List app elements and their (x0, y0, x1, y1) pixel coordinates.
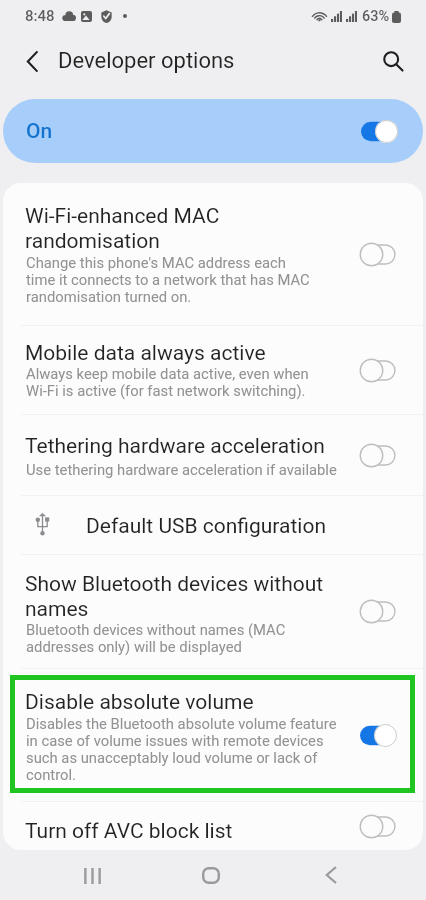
button[interactable]: Wi-Fi-enhanced MAC randomisation (3, 183, 423, 325)
staticText: 8:48 (25, 7, 55, 25)
staticText: Disable absolute volume (25, 689, 385, 714)
button[interactable]: Search (371, 39, 415, 83)
button[interactable]: Recent apps (50, 850, 134, 900)
staticText: Turn off AVC block list (25, 818, 385, 843)
button[interactable]: Turn off AVC block list (3, 802, 423, 850)
staticText: Always keep mobile data active, even whe… (26, 366, 386, 400)
button[interactable]: Home (170, 850, 254, 900)
staticText: Tethering hardware acceleration (25, 433, 385, 458)
button[interactable]: Default USB configuration (3, 496, 423, 554)
button[interactable]: Disable absolute volume (3, 669, 423, 801)
button[interactable]: Tethering hardware acceleration (3, 415, 423, 495)
button[interactable]: Navigate up (10, 39, 54, 83)
staticText: 63% (362, 8, 390, 25)
button[interactable]: Mobile data always active (3, 326, 423, 414)
staticText: Default USB configuration (86, 513, 327, 538)
staticText: Show Bluetooth devices without names (25, 571, 385, 621)
staticText: Disables the Bluetooth absolute volume f… (26, 716, 386, 784)
staticText: On (26, 119, 53, 144)
button[interactable]: Back (289, 850, 373, 900)
button[interactable]: On (3, 99, 423, 163)
staticText: Wi-Fi-enhanced MAC randomisation (25, 203, 385, 253)
staticText: Change this phone's MAC address each tim… (26, 255, 386, 306)
button[interactable]: Show Bluetooth devices without names (3, 555, 423, 668)
staticText: Bluetooth devices without names (MAC add… (26, 622, 386, 656)
staticText: Mobile data always active (25, 340, 385, 365)
staticText: Use tethering hardware acceleration if a… (26, 462, 386, 479)
staticText: Developer options (58, 48, 235, 74)
